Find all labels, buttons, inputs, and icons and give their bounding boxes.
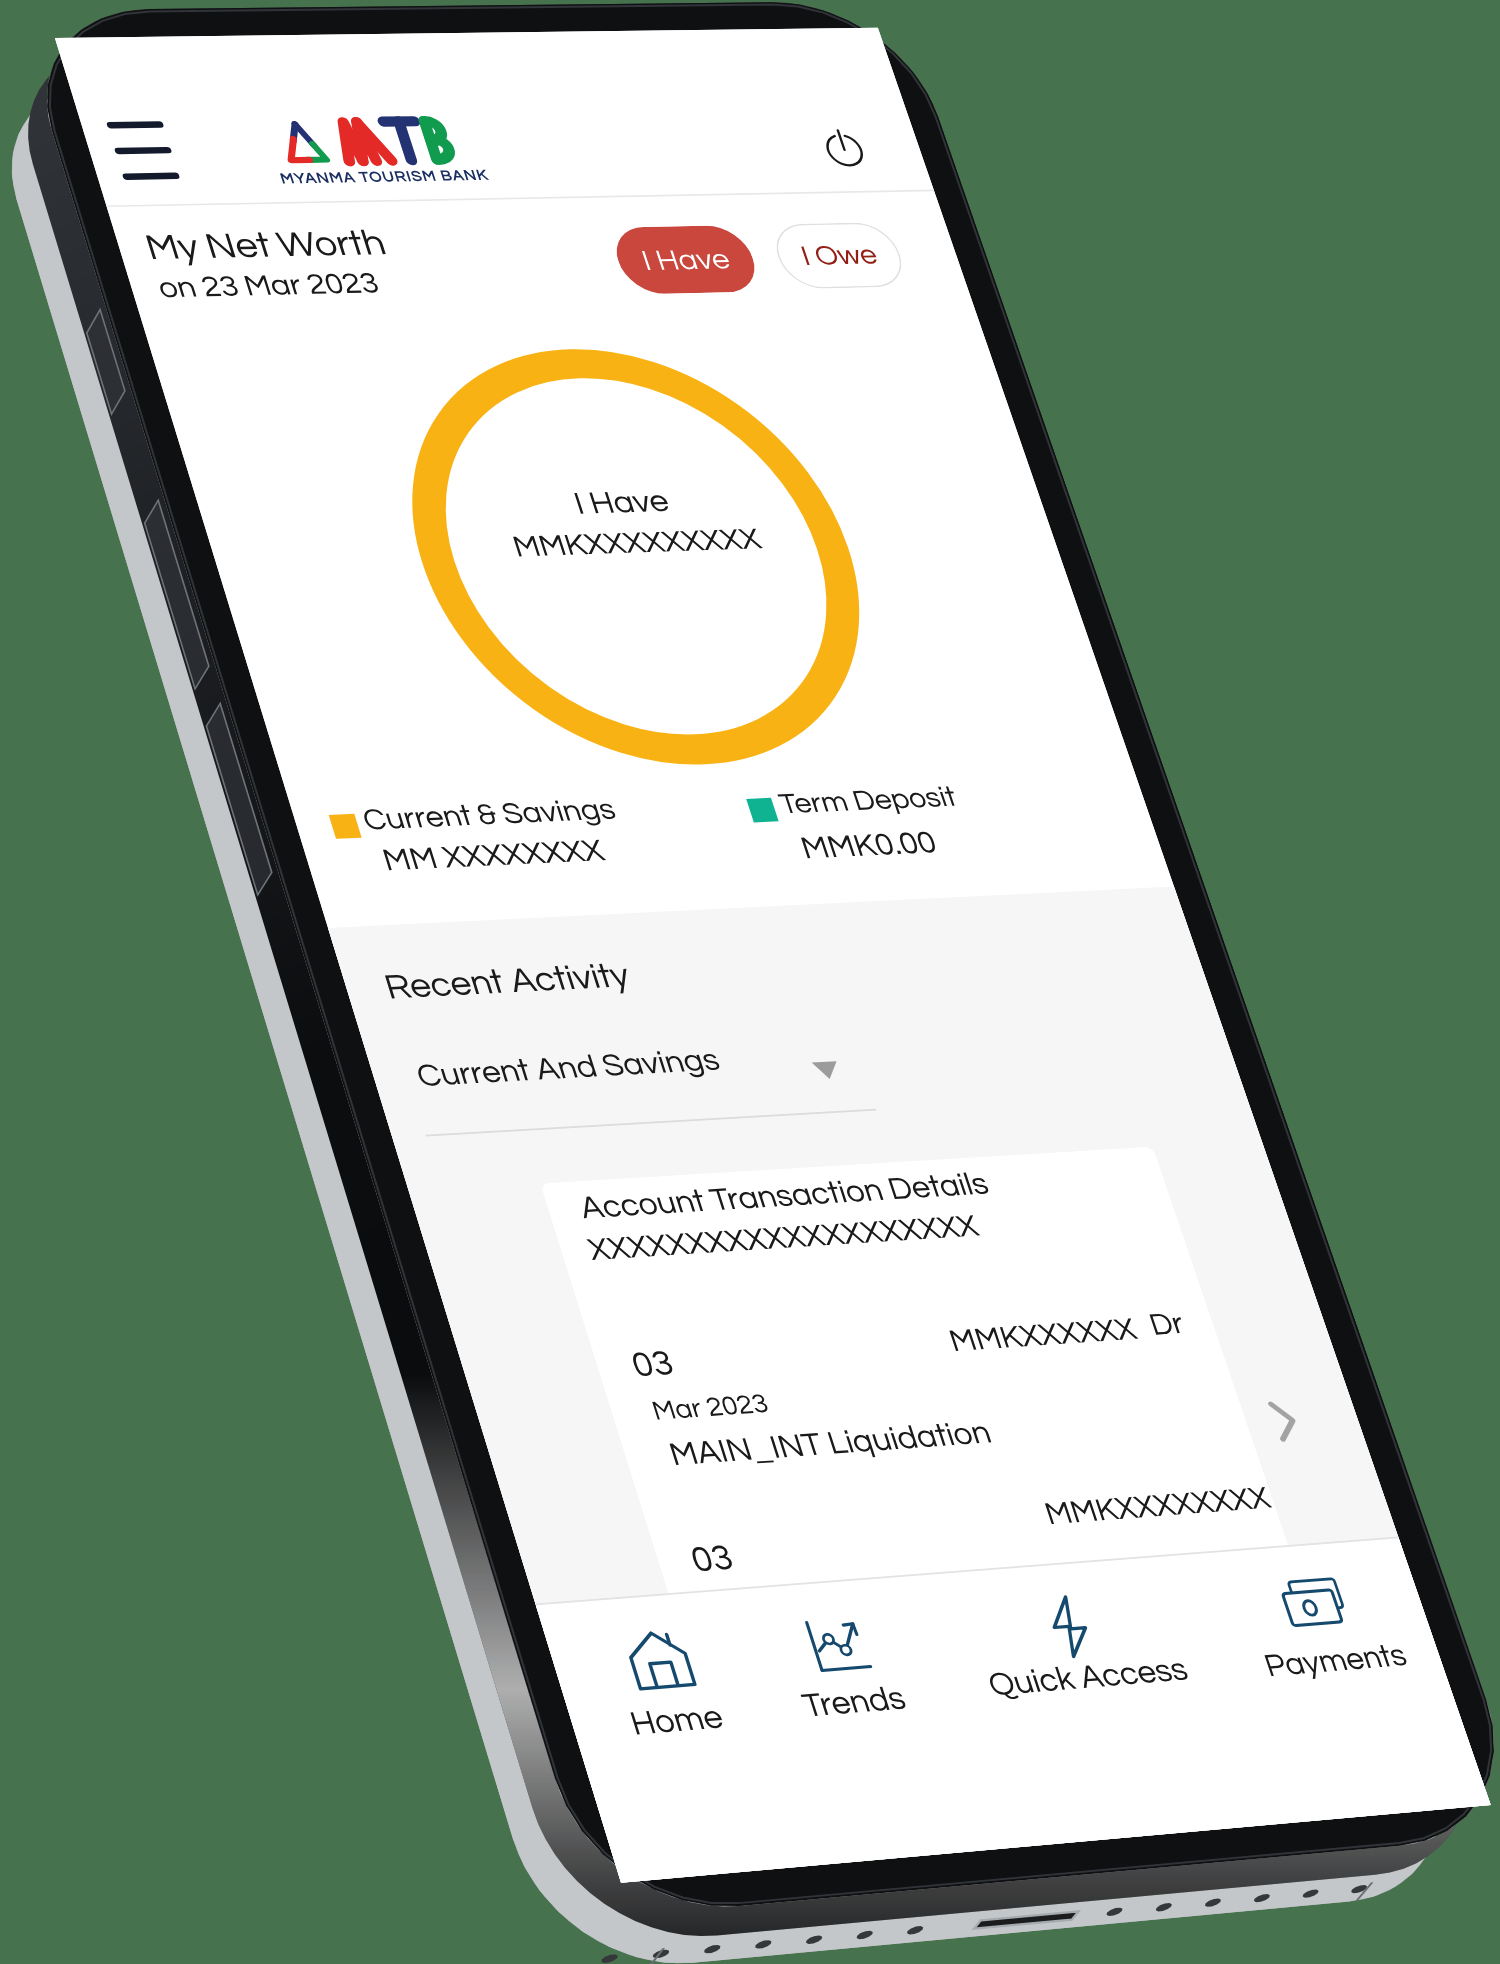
staticText: MMKXXXXXX (945, 1313, 1141, 1357)
staticText: MMK0.00 (797, 827, 941, 865)
staticText: Term Deposit (775, 782, 960, 819)
staticText: MMKXXXXXXXX (1041, 1482, 1275, 1530)
button[interactable]: Menu (95, 113, 191, 188)
staticText: My Net Worth (141, 225, 391, 266)
button[interactable] (743, 1584, 952, 1778)
staticText: Current And Savings (413, 1043, 723, 1092)
button[interactable] (898, 1560, 1266, 1765)
button[interactable]: I Owe (767, 222, 911, 289)
staticText: MYANMA TOURISM BANK (278, 168, 490, 187)
staticText: 03 (627, 1345, 678, 1383)
staticText: I Owe (797, 240, 882, 270)
staticText: MM XXXXXXXX (379, 835, 609, 876)
staticText: Quick Access (984, 1652, 1192, 1702)
staticText: Current & Savings (359, 794, 620, 836)
staticText: Trends (798, 1681, 911, 1723)
button[interactable] (602, 1287, 1242, 1496)
staticText: Payments (1260, 1639, 1411, 1683)
staticText: Dr (1145, 1307, 1188, 1341)
staticText: Account Transaction Details (575, 1167, 993, 1224)
button[interactable] (543, 1596, 797, 1795)
staticText: Home (626, 1700, 727, 1741)
button[interactable]: Power (802, 118, 886, 178)
staticText: I Have (638, 244, 735, 276)
staticText: 03 (687, 1539, 738, 1579)
staticText: MMKXXXXXXXXX (509, 524, 765, 562)
staticText: I Have (570, 485, 673, 520)
staticText: XXXXXXXXXXXXXXXXXXXX (584, 1210, 983, 1266)
staticText: Recent Activity (380, 958, 635, 1006)
staticText: Mar 2023 (648, 1389, 772, 1425)
button[interactable]: I Have (607, 225, 764, 295)
button[interactable] (1209, 1545, 1459, 1738)
staticText: on 23 Mar 2023 (154, 268, 383, 303)
staticText: MAIN_INT Liquidation (665, 1416, 996, 1471)
